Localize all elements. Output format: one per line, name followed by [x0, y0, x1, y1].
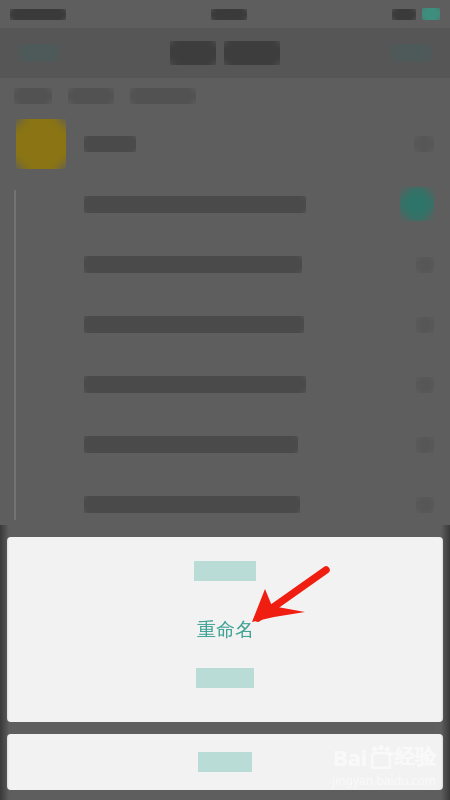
button[interactable] [0, 354, 450, 414]
button[interactable] [0, 234, 450, 294]
button[interactable] [0, 294, 450, 354]
button[interactable] [0, 534, 450, 594]
staticText: 经验 [394, 744, 436, 770]
button[interactable]: More options [388, 42, 434, 64]
button[interactable]: 重命名 [7, 601, 443, 659]
button[interactable] [0, 174, 450, 234]
button[interactable]: Back [16, 42, 62, 64]
button[interactable] [0, 474, 450, 534]
staticText: 重命名 [197, 618, 254, 642]
button[interactable] [7, 734, 443, 790]
button[interactable] [0, 414, 450, 474]
